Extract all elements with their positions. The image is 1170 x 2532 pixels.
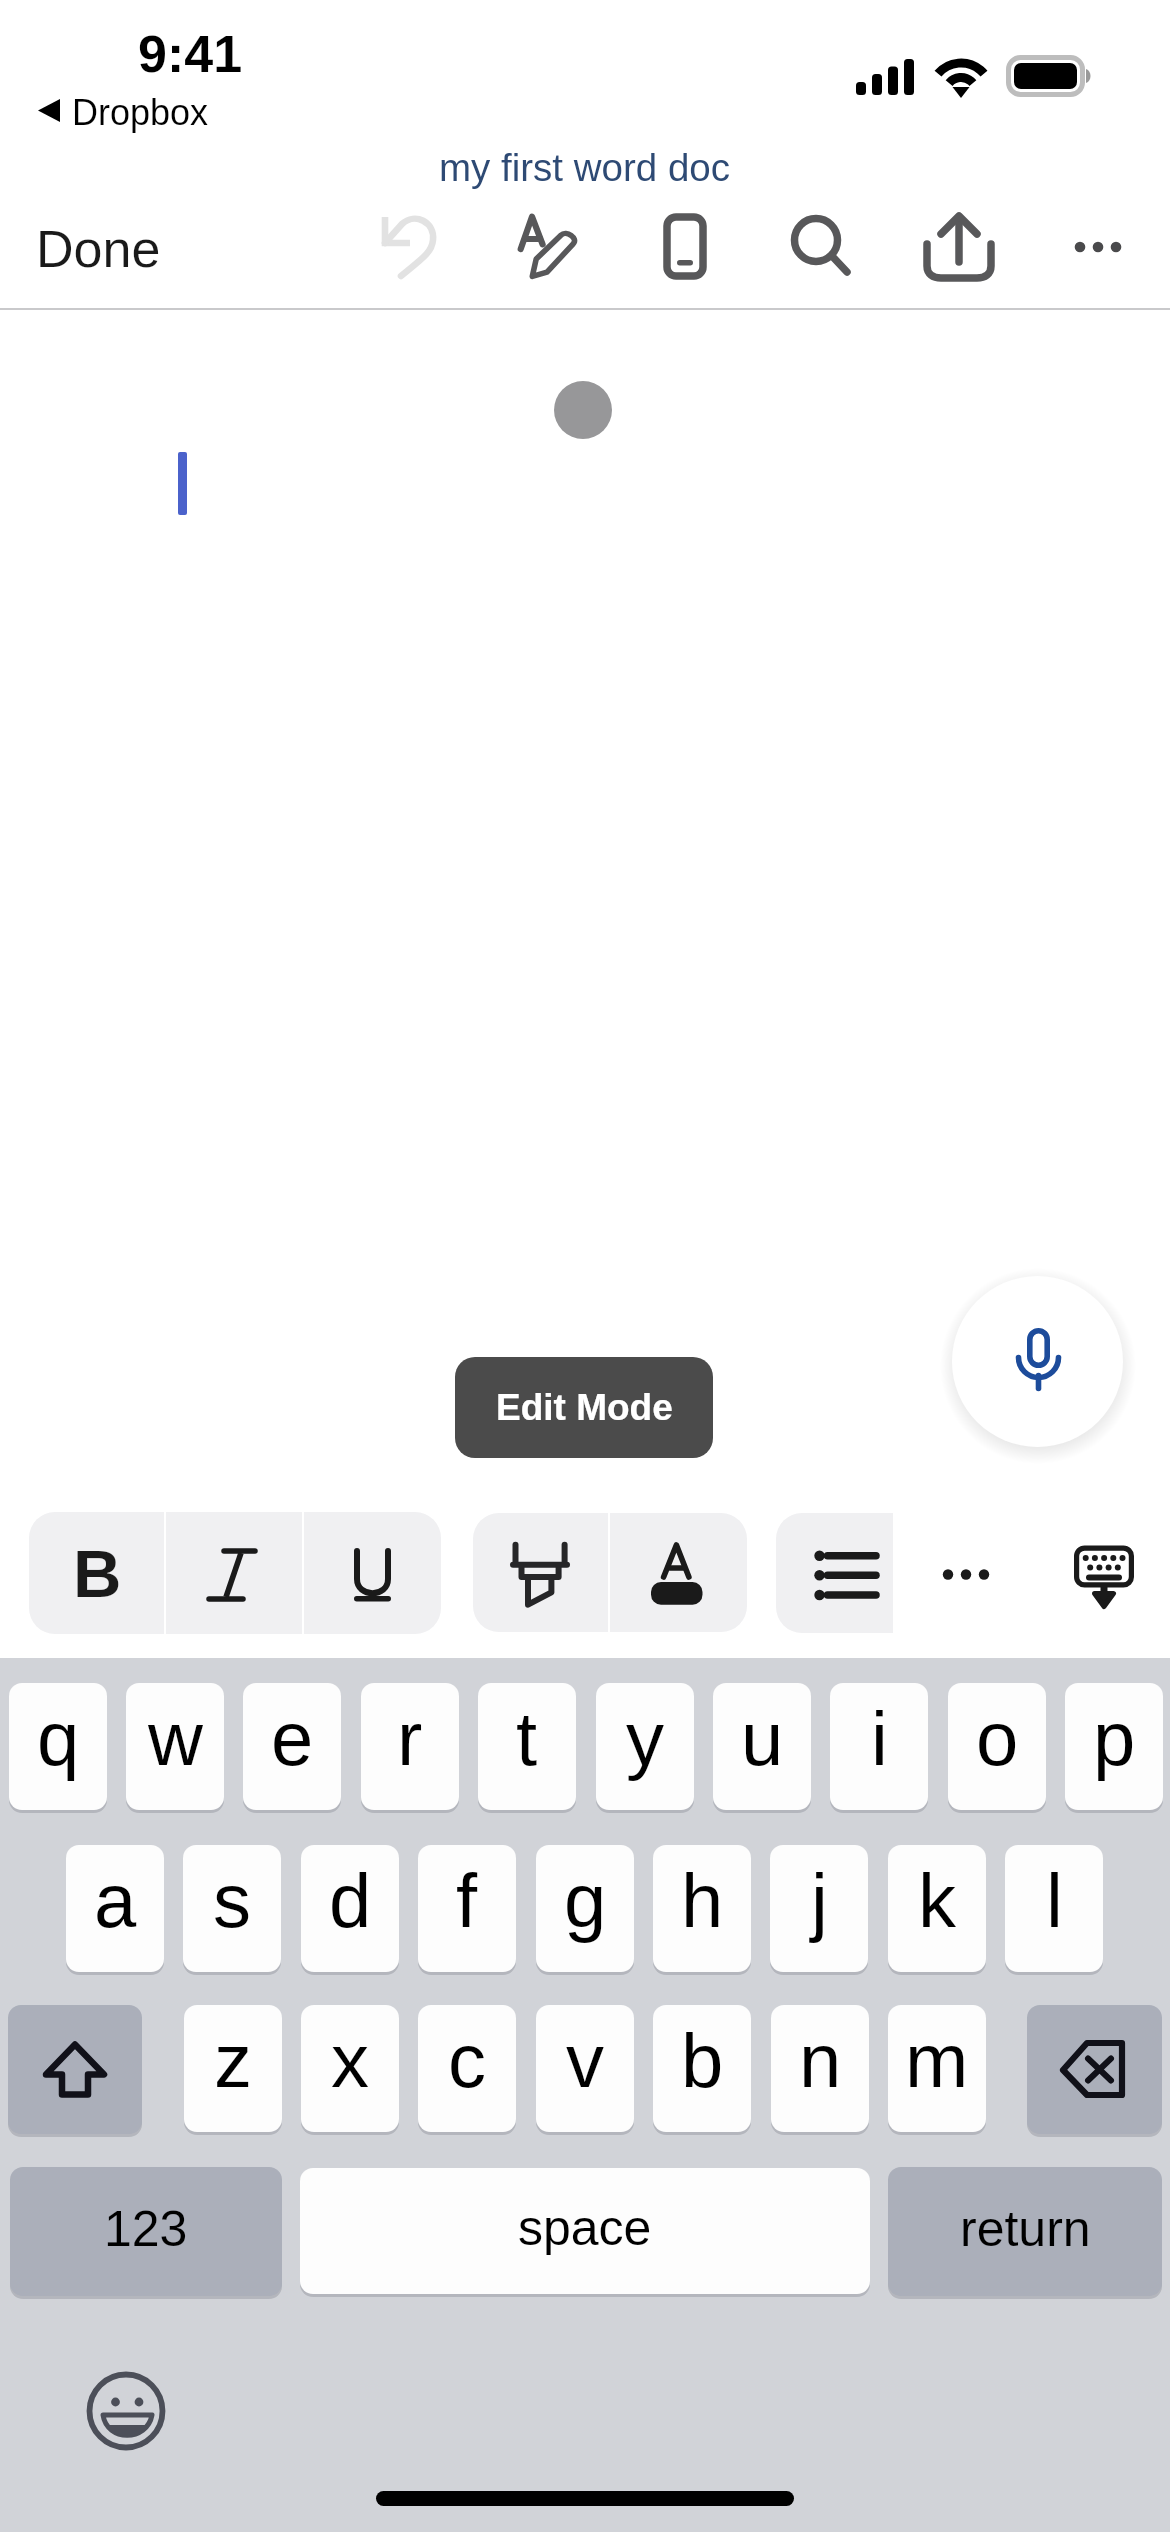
button[interactable]: q xyxy=(9,1683,107,1810)
button[interactable]: return xyxy=(888,2167,1162,2296)
button[interactable]: Share xyxy=(905,192,1013,300)
staticText: o xyxy=(976,1696,1019,1781)
staticText: u xyxy=(741,1696,784,1781)
staticText: c xyxy=(448,2018,486,2103)
button[interactable]: h xyxy=(653,1845,751,1972)
button[interactable]: Edit Mode xyxy=(455,1357,713,1458)
button[interactable]: More options xyxy=(1044,192,1152,300)
button[interactable]: Search xyxy=(762,192,870,300)
staticText: h xyxy=(681,1858,724,1943)
button[interactable]: Italic xyxy=(166,1512,304,1634)
button[interactable]: u xyxy=(713,1683,811,1810)
button[interactable]: Undo xyxy=(358,192,466,300)
button[interactable]: Dropbox xyxy=(72,92,209,132)
staticText: 9:41 xyxy=(138,25,243,83)
staticText: p xyxy=(1093,1696,1136,1781)
staticText: Done xyxy=(36,220,161,278)
staticText: space xyxy=(518,2200,652,2256)
button[interactable]: o xyxy=(948,1683,1046,1810)
staticText: g xyxy=(564,1858,607,1943)
staticText: w xyxy=(148,1696,203,1781)
button[interactable]: b xyxy=(653,2005,751,2132)
staticText: f xyxy=(456,1858,478,1943)
button[interactable]: j xyxy=(770,1845,868,1972)
button[interactable]: space xyxy=(300,2168,870,2294)
button[interactable]: g xyxy=(536,1845,634,1972)
staticText: z xyxy=(214,2018,252,2103)
staticText: e xyxy=(271,1696,314,1781)
button[interactable]: e xyxy=(243,1683,341,1810)
button[interactable]: p xyxy=(1065,1683,1163,1810)
button[interactable]: Emoji xyxy=(80,2365,172,2457)
staticText: B xyxy=(73,1536,122,1611)
staticText: t xyxy=(516,1696,538,1781)
button[interactable]: Font color xyxy=(609,1513,747,1632)
button[interactable]: Highlight xyxy=(473,1513,609,1632)
button[interactable]: n xyxy=(771,2005,869,2132)
button[interactable]: Text edit xyxy=(494,190,602,298)
button[interactable]: f xyxy=(418,1845,516,1972)
button[interactable]: Mobile view xyxy=(631,192,739,300)
button[interactable]: Done xyxy=(16,205,181,295)
staticText: my first word doc xyxy=(439,146,730,189)
staticText: x xyxy=(331,2018,369,2103)
button[interactable]: r xyxy=(361,1683,459,1810)
button[interactable]: s xyxy=(183,1845,281,1972)
staticText: b xyxy=(681,2018,724,2103)
button[interactable]: More formatting xyxy=(908,1513,1024,1633)
button[interactable]: m xyxy=(888,2005,986,2132)
button[interactable]: w xyxy=(126,1683,224,1810)
staticText: n xyxy=(799,2018,842,2103)
button[interactable]: c xyxy=(418,2005,516,2132)
button[interactable]: Underline xyxy=(304,1512,441,1634)
button[interactable]: a xyxy=(66,1845,164,1972)
staticText: l xyxy=(1046,1858,1063,1943)
staticText: Edit Mode xyxy=(496,1387,673,1428)
button[interactable]: Backspace xyxy=(1027,2005,1162,2134)
button[interactable]: Bold xyxy=(29,1512,166,1634)
button[interactable]: Shift xyxy=(8,2005,142,2134)
staticText: m xyxy=(905,2018,969,2103)
staticText: j xyxy=(811,1858,828,1943)
button[interactable]: t xyxy=(478,1683,576,1810)
staticText: k xyxy=(918,1858,956,1943)
staticText: s xyxy=(213,1858,251,1943)
button[interactable]: v xyxy=(536,2005,634,2132)
button[interactable]: x xyxy=(301,2005,399,2132)
button[interactable]: k xyxy=(888,1845,986,1972)
button[interactable]: 123 xyxy=(10,2167,282,2296)
button[interactable]: i xyxy=(830,1683,928,1810)
staticText: q xyxy=(37,1696,80,1781)
button[interactable]: Dictate xyxy=(952,1276,1123,1447)
button[interactable]: Hide keyboard xyxy=(1040,1513,1164,1633)
button[interactable]: d xyxy=(301,1845,399,1972)
button[interactable]: l xyxy=(1005,1845,1103,1972)
button[interactable]: z xyxy=(184,2005,282,2132)
staticText: v xyxy=(566,2018,604,2103)
staticText: return xyxy=(960,2201,1091,2257)
staticText: i xyxy=(871,1696,888,1781)
button[interactable]: y xyxy=(596,1683,694,1810)
staticText: d xyxy=(329,1858,372,1943)
staticText: a xyxy=(94,1858,137,1943)
staticText: r xyxy=(397,1696,423,1781)
staticText: y xyxy=(626,1696,664,1781)
button[interactable]: Bulleted list xyxy=(776,1513,893,1633)
staticText: 123 xyxy=(104,2201,188,2257)
